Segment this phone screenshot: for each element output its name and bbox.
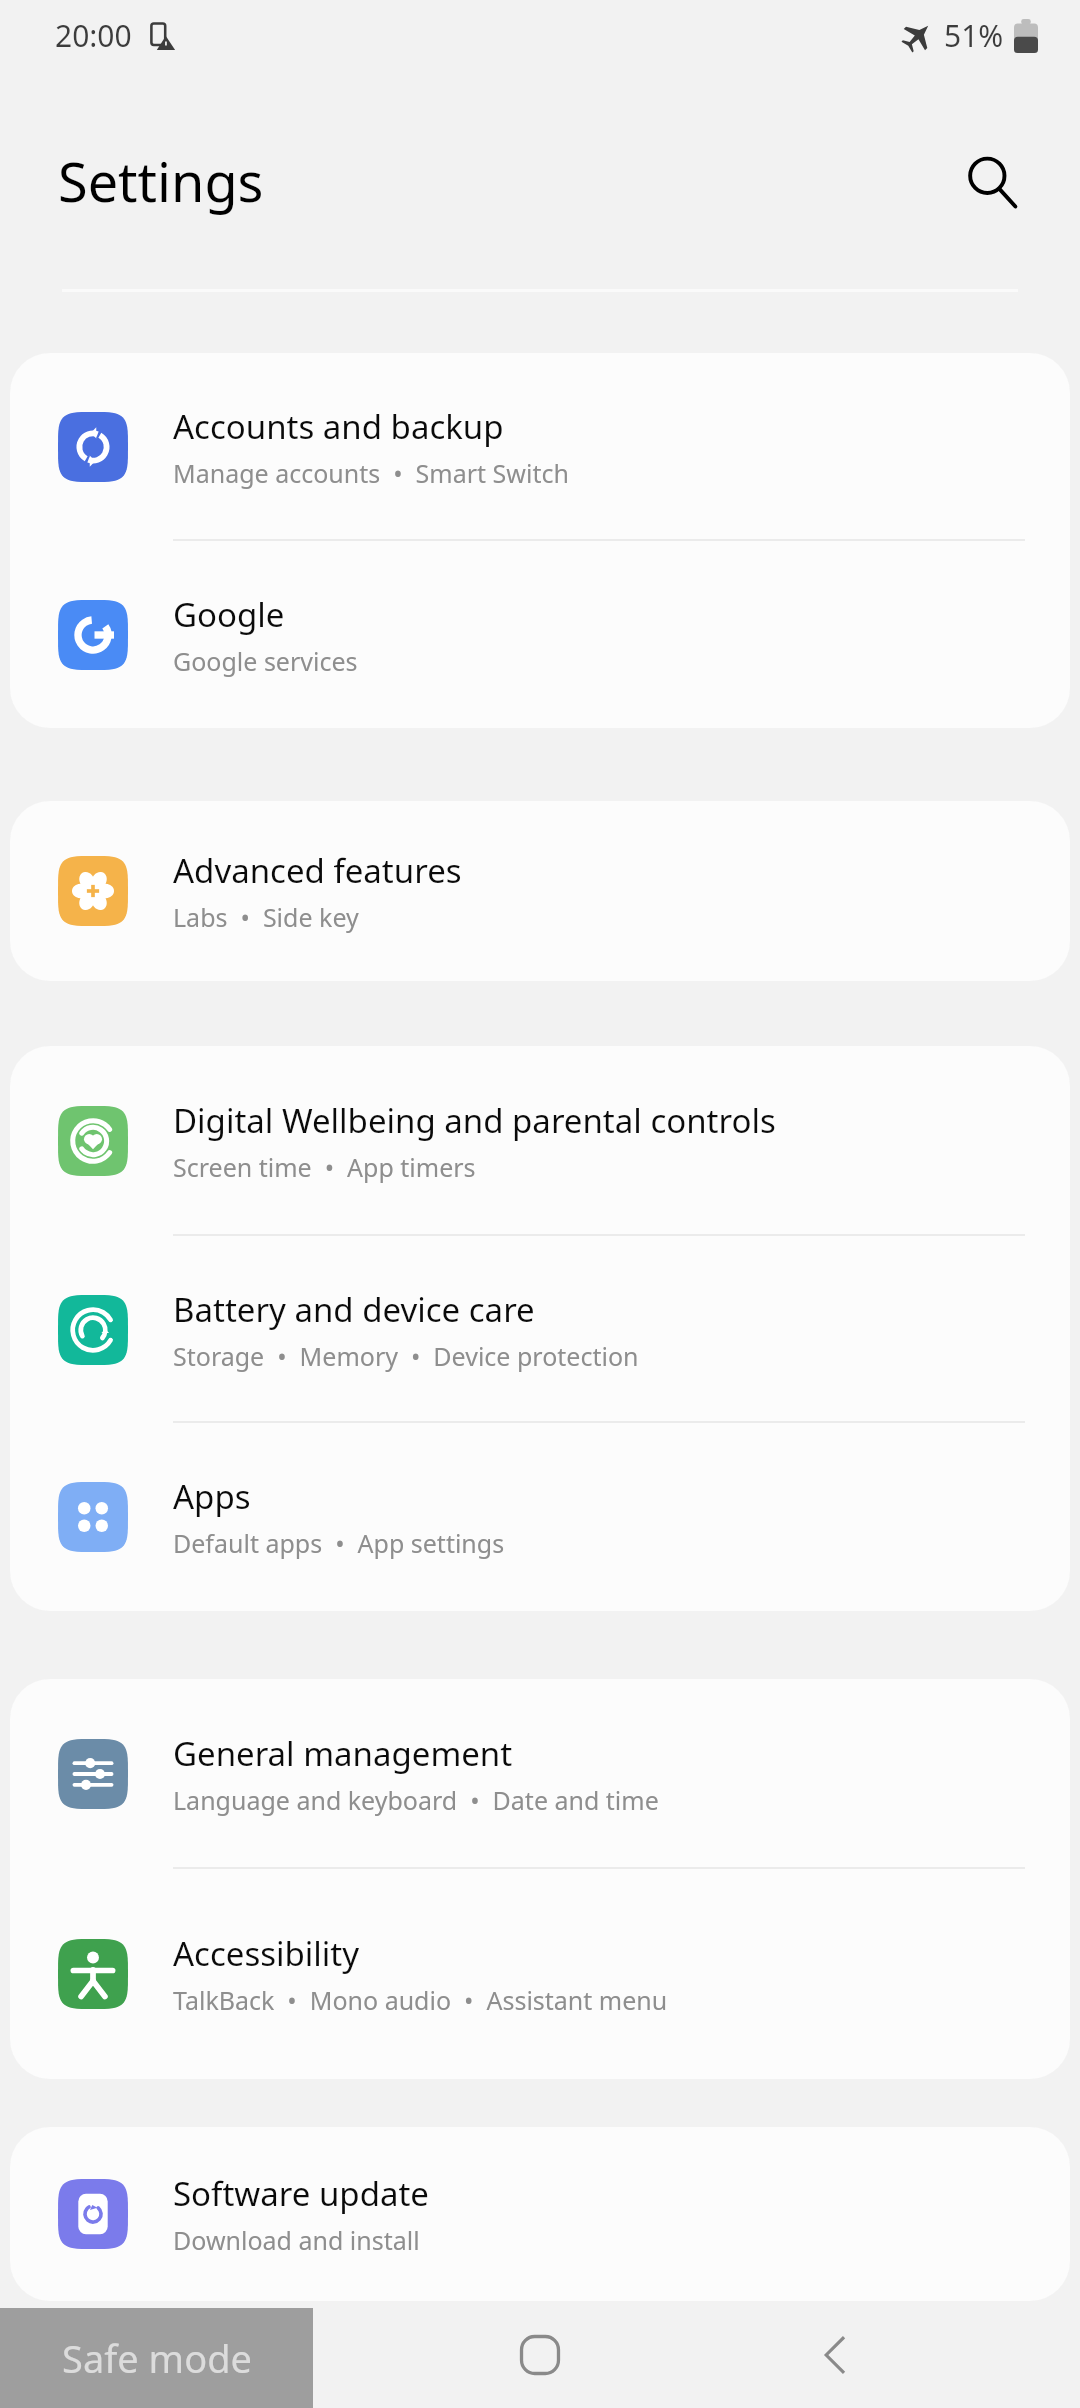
staticText: Manage accounts • Smart Switch — [173, 456, 569, 490]
staticText: Google services — [173, 644, 358, 678]
button[interactable]: Google — [10, 541, 1070, 728]
staticText: General management — [173, 1731, 513, 1776]
staticText: Safe mode — [62, 2332, 252, 2384]
staticText: Battery and device care — [173, 1287, 535, 1332]
button[interactable]: Advanced features — [10, 801, 1070, 981]
staticText: Apps — [173, 1474, 251, 1519]
staticText: Accounts and backup — [173, 404, 504, 449]
button[interactable]: Battery and device care — [10, 1236, 1070, 1423]
button[interactable]: Home — [480, 2302, 600, 2408]
staticText: Download and install — [173, 2223, 420, 2257]
staticText: Google — [173, 592, 285, 637]
staticText: Default apps • App settings — [173, 1526, 505, 1560]
button[interactable]: Recent apps — [175, 2302, 295, 2408]
staticText: Settings — [58, 144, 264, 218]
staticText: Software update — [173, 2171, 429, 2216]
button[interactable]: Search — [944, 133, 1040, 229]
staticText: Labs • Side key — [173, 900, 359, 934]
staticText: Accessibility — [173, 1931, 360, 1976]
button[interactable]: Accessibility — [10, 1869, 1070, 2079]
staticText: Digital Wellbeing and parental controls — [173, 1098, 776, 1143]
button[interactable]: Apps — [10, 1423, 1070, 1611]
button[interactable]: Software update — [10, 2127, 1070, 2301]
button[interactable]: General management — [10, 1679, 1070, 1869]
button[interactable]: Digital Wellbeing and parental controls — [10, 1046, 1070, 1236]
staticText: TalkBack • Mono audio • Assistant menu — [173, 1983, 668, 2017]
staticText: Language and keyboard • Date and time — [173, 1783, 659, 1817]
staticText: Screen time • App timers — [173, 1150, 476, 1184]
staticText: Advanced features — [173, 848, 462, 893]
staticText: 51% — [944, 15, 1004, 56]
button[interactable]: Back — [775, 2302, 895, 2408]
button[interactable]: Accounts and backup — [10, 353, 1070, 541]
staticText: Storage • Memory • Device protection — [173, 1339, 639, 1373]
staticText: 20:00 — [55, 15, 132, 56]
